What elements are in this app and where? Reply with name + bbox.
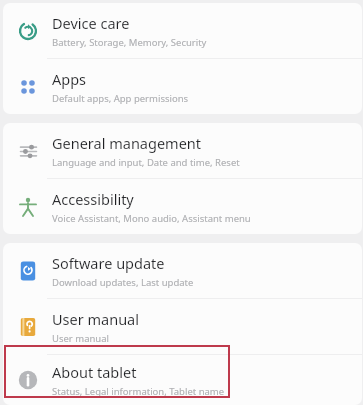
staticText: About tablet	[52, 362, 137, 382]
other: Accessibility	[18, 197, 38, 217]
staticText: User manual	[52, 332, 109, 345]
button[interactable]: User manual	[3, 299, 362, 354]
staticText: Download updates, Last update	[52, 276, 194, 289]
other: Apps	[19, 78, 37, 96]
staticText: Language and input, Date and time, Reset	[52, 156, 240, 169]
other: General management	[19, 142, 38, 161]
staticText: Battery, Storage, Memory, Security	[52, 36, 207, 49]
staticText: General management	[52, 133, 202, 153]
staticText: Default apps, App permissions	[52, 92, 189, 105]
button[interactable]: Accessibility	[3, 179, 362, 234]
button[interactable]: About tablet	[3, 355, 362, 405]
staticText: Apps	[52, 69, 87, 89]
button[interactable]: Apps	[3, 59, 362, 114]
other: About tablet	[18, 370, 38, 390]
button[interactable]: Software update	[3, 243, 362, 298]
staticText: Device care	[52, 13, 130, 33]
staticText: Status, Legal information, Tablet name	[52, 385, 225, 398]
staticText: Software update	[52, 253, 165, 273]
other: Software update	[18, 261, 38, 281]
staticText: Accessibility	[52, 189, 134, 209]
button[interactable]: Device care	[3, 3, 362, 58]
other: Device care	[18, 21, 38, 41]
staticText: User manual	[52, 309, 139, 329]
staticText: Voice Assistant, Mono audio, Assistant m…	[52, 212, 251, 225]
button[interactable]: General management	[3, 123, 362, 178]
other: User manual	[18, 317, 38, 337]
